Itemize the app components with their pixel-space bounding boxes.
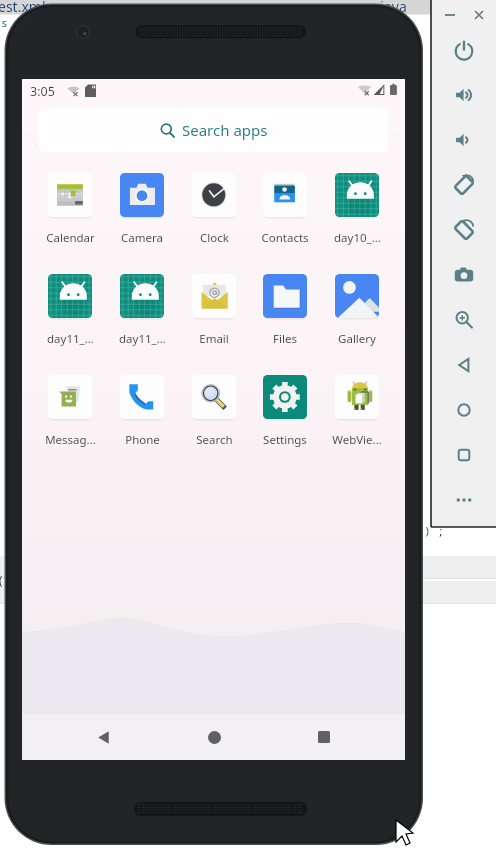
button[interactable]: Rotate left [431, 169, 496, 201]
button[interactable]: WebVie... [322, 375, 392, 448]
staticText: Contacts [261, 230, 309, 246]
button[interactable]: Gallery [322, 274, 392, 347]
button[interactable]: Email [179, 274, 249, 347]
button[interactable]: day11_... [35, 274, 105, 347]
staticText: Messag... [45, 432, 96, 448]
staticText: Calendar [46, 230, 95, 246]
button[interactable]: Back [431, 349, 496, 381]
button[interactable]: Back [73, 714, 133, 760]
button[interactable]: Calendar [35, 173, 105, 246]
staticText: Email [199, 331, 229, 347]
button[interactable]: Volume up [431, 79, 496, 111]
staticText: ( [0, 572, 5, 588]
staticText: Search [196, 432, 233, 448]
staticText: Camera [121, 230, 163, 246]
staticText: Files [273, 331, 297, 347]
staticText: Search apps [182, 120, 268, 140]
button[interactable]: Search apps [39, 108, 388, 152]
button[interactable]: Contacts [250, 173, 320, 246]
button[interactable]: day10_... [322, 173, 392, 246]
staticText: Gallery [338, 331, 376, 347]
staticText: y.java [370, 0, 407, 16]
button[interactable]: Rotate right [431, 214, 496, 246]
button[interactable]: day11_... [107, 274, 177, 347]
staticText: est.xml [0, 0, 46, 16]
staticText: day11_... [119, 331, 166, 347]
staticText: day10_... [334, 230, 381, 246]
button[interactable]: Overview [431, 439, 496, 471]
staticText: ) ; [424, 523, 444, 538]
button[interactable]: Settings [250, 375, 320, 448]
staticText: day11_... [47, 331, 94, 347]
staticText: Settings [263, 432, 307, 448]
staticText: Phone [125, 432, 160, 448]
button[interactable]: Power [431, 34, 496, 66]
staticText: Clock [200, 230, 229, 246]
button[interactable]: Files [250, 274, 320, 347]
button[interactable]: Messag... [35, 375, 105, 448]
button[interactable]: Search [179, 375, 249, 448]
button[interactable]: More [431, 484, 496, 516]
button[interactable]: Clock [179, 173, 249, 246]
button[interactable]: Screenshot [431, 259, 496, 291]
button[interactable]: Volume down [431, 124, 496, 156]
button[interactable]: Zoom [431, 304, 496, 336]
button[interactable]: Home [431, 394, 496, 426]
staticText: s [1, 15, 8, 30]
staticText: WebVie... [332, 432, 382, 448]
staticText: 3:05 [30, 83, 55, 100]
button[interactable]: Phone [107, 375, 177, 448]
button[interactable]: Recent apps [294, 714, 354, 760]
button[interactable]: Home [184, 714, 244, 760]
button[interactable]: Camera [107, 173, 177, 246]
